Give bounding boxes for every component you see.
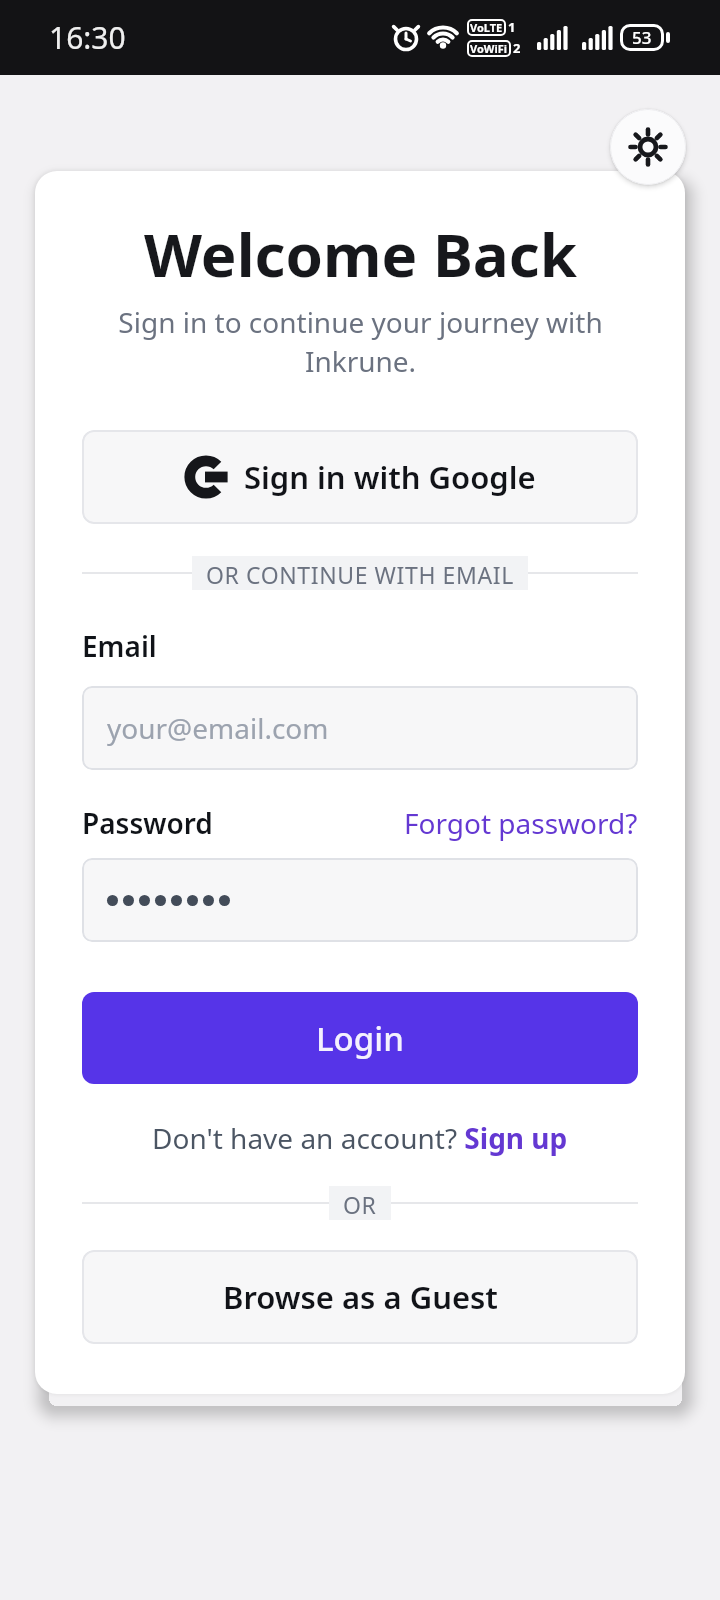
staticText: Password xyxy=(82,804,213,842)
staticText: OR xyxy=(343,1189,377,1217)
staticText: 1 xyxy=(508,18,516,36)
button[interactable]: Forgot password? xyxy=(404,804,638,842)
button[interactable]: Login xyxy=(82,992,638,1084)
staticText: Browse as a Guest xyxy=(223,1276,498,1318)
staticText: VoLTE xyxy=(470,20,503,35)
staticText: 2 xyxy=(513,39,521,57)
button[interactable]: Don't have an account? Sign up xyxy=(82,1119,638,1157)
staticText: Forgot password? xyxy=(404,804,638,842)
staticText: Sign in with Google xyxy=(244,456,536,498)
button[interactable] xyxy=(82,858,638,942)
staticText: VoWiFi xyxy=(470,41,508,56)
staticText: 16:30 xyxy=(49,17,126,58)
button[interactable]: Sign in with Google xyxy=(82,430,638,524)
staticText: Don't have an account? Sign up xyxy=(152,1119,568,1157)
staticText: Login xyxy=(316,1016,404,1061)
staticText: your@email.com xyxy=(107,709,329,747)
staticText: OR CONTINUE WITH EMAIL xyxy=(206,559,514,587)
staticText: Sign in to continue your journey with In… xyxy=(118,303,603,380)
staticText: Welcome Back xyxy=(144,213,577,295)
staticText: 53 xyxy=(632,26,652,49)
button[interactable]: Browse as a Guest xyxy=(82,1250,638,1344)
button[interactable] xyxy=(610,109,686,185)
staticText: Email xyxy=(82,627,157,665)
button[interactable]: your@email.com xyxy=(82,686,638,770)
